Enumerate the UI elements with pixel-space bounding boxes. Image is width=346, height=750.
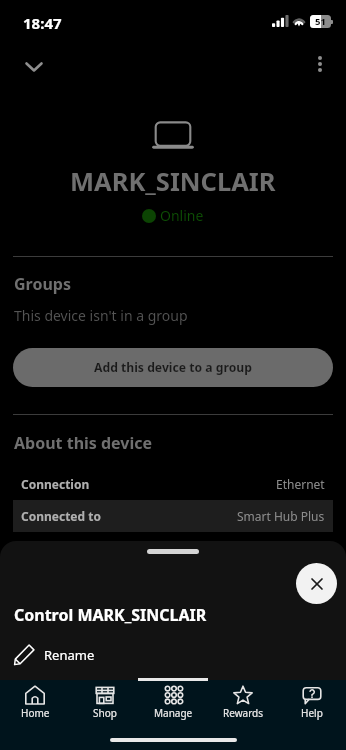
staticText: Manage <box>154 706 193 720</box>
staticText: Online <box>160 206 204 225</box>
staticText: Help <box>301 706 323 720</box>
button[interactable]: Rewards <box>208 680 277 750</box>
staticText: MARK_SINCLAIR <box>70 164 276 199</box>
staticText: Add this device to a group <box>94 359 252 376</box>
staticText: Smart Hub Plus <box>237 508 325 524</box>
staticText: 51 <box>315 15 326 28</box>
staticText: Rename <box>44 646 95 664</box>
button[interactable]: Collapse <box>13 46 54 87</box>
button[interactable]: Home <box>0 680 70 750</box>
staticText: Ethernet <box>276 476 325 492</box>
staticText: Control MARK_SINCLAIR <box>14 604 207 626</box>
button[interactable]: Connection <box>21 468 325 500</box>
button[interactable]: Connected to <box>21 500 325 532</box>
staticText: Connected to <box>21 508 101 524</box>
button[interactable]: Shop <box>70 680 139 750</box>
button[interactable]: More options <box>299 43 340 84</box>
staticText: Shop <box>93 706 117 720</box>
staticText: This device isn't in a group <box>14 306 188 325</box>
staticText: Rewards <box>223 706 263 720</box>
button[interactable]: Add this device to a group <box>13 348 333 387</box>
button[interactable]: Manage <box>139 680 208 750</box>
staticText: About this device <box>14 432 153 454</box>
staticText: Connection <box>21 476 90 492</box>
button[interactable]: Help <box>277 680 346 750</box>
button[interactable]: Rename <box>13 643 95 666</box>
button[interactable]: Close <box>296 563 337 604</box>
staticText: Home <box>21 706 50 720</box>
staticText: 18:47 <box>23 13 62 33</box>
staticText: Groups <box>14 273 71 295</box>
